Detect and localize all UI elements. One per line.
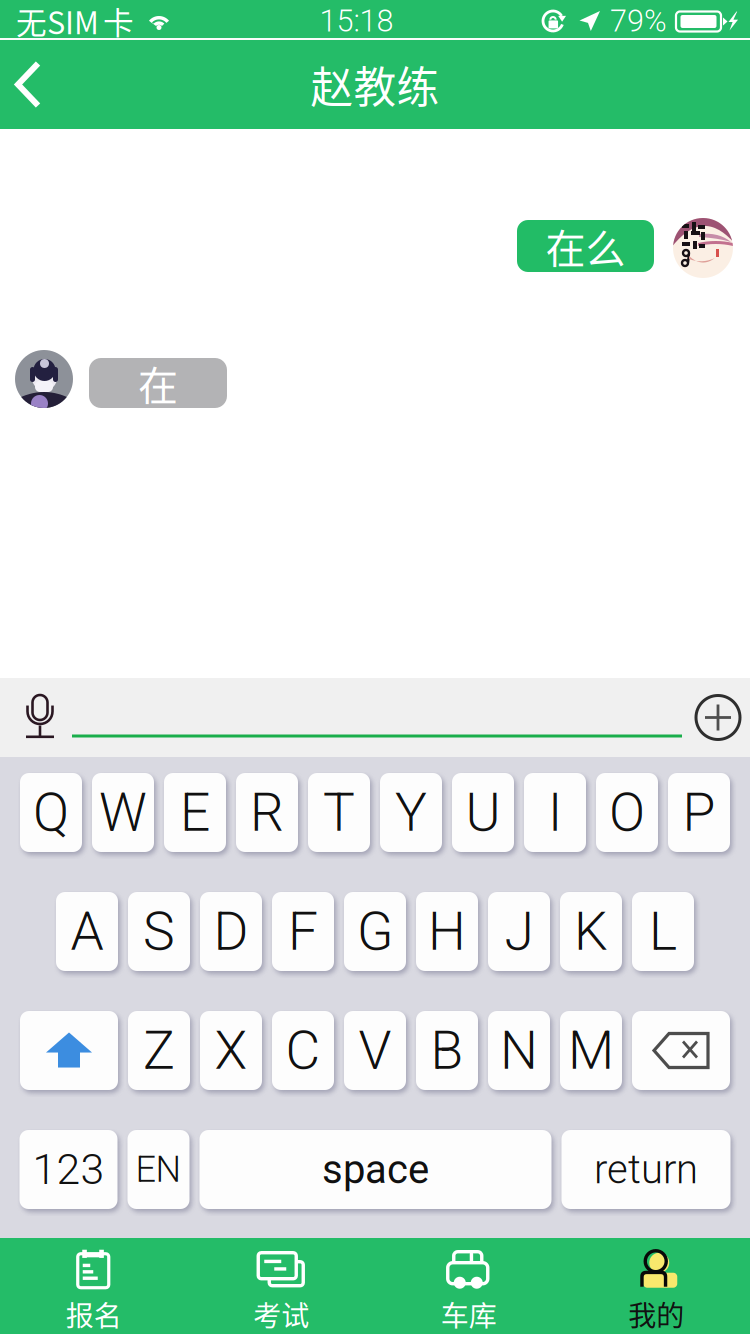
button[interactable]: V: [344, 1011, 406, 1090]
button[interactable]: Y: [380, 773, 442, 852]
button[interactable]: 123: [19, 1130, 117, 1209]
staticText: D: [213, 900, 248, 963]
button[interactable]: Voice input: [12, 691, 68, 743]
staticText: P: [682, 781, 715, 844]
button[interactable]: K: [560, 892, 622, 971]
button[interactable]: space: [199, 1130, 551, 1209]
button[interactable]: Z: [128, 1011, 190, 1090]
staticText: EN: [135, 1148, 181, 1191]
button[interactable]: L: [632, 892, 694, 971]
button[interactable]: return: [561, 1130, 730, 1209]
staticText: 无SIM: [16, 0, 99, 43]
button[interactable]: 我的: [562, 1231, 750, 1334]
staticText: 15:18: [319, 3, 393, 39]
button[interactable]: W: [92, 773, 154, 852]
staticText: J: [504, 900, 533, 963]
staticText: 赵教练: [310, 54, 439, 115]
staticText: C: [285, 1019, 320, 1082]
button[interactable]: A: [56, 892, 118, 971]
staticText: E: [180, 781, 210, 844]
button[interactable]: T: [308, 773, 370, 852]
staticText: G: [357, 900, 393, 963]
button[interactable]: H: [416, 892, 478, 971]
staticText: N: [500, 1019, 538, 1082]
button[interactable]: I: [524, 773, 586, 852]
button[interactable]: G: [344, 892, 406, 971]
button[interactable]: Q: [20, 773, 82, 852]
button[interactable]: U: [452, 773, 514, 852]
button[interactable]: Back: [0, 40, 68, 128]
staticText: 在: [138, 354, 178, 412]
button[interactable]: X: [200, 1011, 262, 1090]
staticText: V: [358, 1019, 391, 1082]
staticText: 报名: [66, 1294, 122, 1334]
button[interactable]: P: [668, 773, 730, 852]
staticText: X: [214, 1019, 247, 1082]
button[interactable]: 车库: [375, 1231, 562, 1334]
staticText: 79%: [610, 3, 667, 39]
staticText: S: [143, 900, 175, 963]
button[interactable]: More options: [696, 695, 740, 739]
button[interactable]: E: [164, 773, 226, 852]
button[interactable]: N: [488, 1011, 550, 1090]
button[interactable]: M: [560, 1011, 622, 1090]
button[interactable]: Backspace: [632, 1011, 730, 1090]
staticText: W: [99, 781, 147, 844]
staticText: 123: [32, 1144, 104, 1194]
staticText: T: [323, 781, 355, 844]
staticText: 车库: [441, 1294, 497, 1334]
button[interactable]: 报名: [0, 1231, 187, 1334]
staticText: M: [568, 1019, 614, 1082]
staticText: O: [609, 781, 645, 844]
staticText: K: [574, 900, 608, 963]
button[interactable]: 考试: [187, 1231, 375, 1334]
staticText: I: [548, 781, 562, 844]
button[interactable]: J: [488, 892, 550, 971]
staticText: U: [465, 781, 500, 844]
staticText: Z: [143, 1019, 175, 1082]
button[interactable]: S: [128, 892, 190, 971]
button[interactable]: O: [596, 773, 658, 852]
staticText: H: [428, 900, 466, 963]
staticText: return: [594, 1146, 698, 1193]
staticText: space: [322, 1146, 429, 1193]
button[interactable]: R: [236, 773, 298, 852]
staticText: Q: [33, 781, 69, 844]
staticText: L: [649, 900, 677, 963]
staticText: 我的: [628, 1294, 684, 1334]
staticText: B: [430, 1019, 463, 1082]
staticText: 考试: [253, 1294, 309, 1334]
button[interactable]: Shift: [20, 1011, 118, 1090]
staticText: 卡: [103, 0, 134, 43]
button[interactable]: F: [272, 892, 334, 971]
staticText: Y: [395, 781, 427, 844]
button[interactable]: B: [416, 1011, 478, 1090]
staticText: A: [70, 900, 103, 963]
button[interactable]: D: [200, 892, 262, 971]
button[interactable]: EN: [127, 1130, 189, 1209]
staticText: R: [250, 781, 284, 844]
button[interactable]: C: [272, 1011, 334, 1090]
staticText: F: [288, 900, 318, 963]
staticText: 在么: [545, 217, 625, 275]
